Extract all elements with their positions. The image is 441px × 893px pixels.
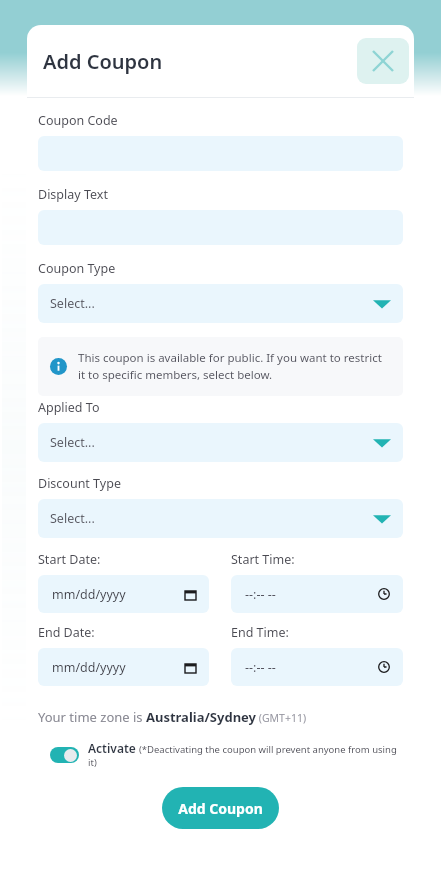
button[interactable]: mm/dd/yyyy bbox=[38, 575, 209, 613]
button[interactable]: Select... bbox=[38, 499, 403, 538]
staticText: Discount Type bbox=[38, 475, 121, 492]
staticText: Start Date: bbox=[38, 551, 101, 568]
button[interactable]: Select... bbox=[38, 284, 403, 323]
button[interactable]: Select... bbox=[38, 423, 403, 462]
staticText: Your time zone is Australia/Sydney (GMT+… bbox=[38, 708, 307, 726]
staticText: mm/dd/yyyy bbox=[52, 659, 126, 676]
staticText: --:-- -- bbox=[245, 659, 276, 676]
button[interactable]: --:-- -- bbox=[231, 575, 403, 613]
button[interactable]: --:-- -- bbox=[231, 648, 403, 686]
staticText: mm/dd/yyyy bbox=[52, 586, 126, 603]
staticText: Activate (*Deactivating the coupon will … bbox=[88, 740, 403, 769]
staticText: Add Coupon bbox=[43, 48, 163, 75]
button[interactable]: Add Coupon bbox=[162, 787, 279, 829]
staticText: This coupon is available for public. If … bbox=[78, 350, 391, 383]
staticText: Add Coupon bbox=[178, 799, 263, 818]
staticText: Start Time: bbox=[231, 551, 295, 568]
staticText: Select... bbox=[50, 510, 95, 527]
button[interactable]: Close bbox=[357, 38, 409, 84]
staticText: Display Text bbox=[38, 186, 108, 203]
staticText: Coupon Code bbox=[38, 112, 118, 129]
staticText: Select... bbox=[50, 295, 95, 312]
staticText: Coupon Type bbox=[38, 260, 116, 277]
staticText: End Date: bbox=[38, 624, 95, 641]
staticText: Select... bbox=[50, 434, 95, 451]
staticText: End Time: bbox=[231, 624, 289, 641]
staticText: Applied To bbox=[38, 399, 100, 416]
button[interactable]: mm/dd/yyyy bbox=[38, 648, 209, 686]
button[interactable]: Activate (*Deactivating the coupon will … bbox=[38, 740, 403, 769]
staticText: --:-- -- bbox=[245, 586, 276, 603]
